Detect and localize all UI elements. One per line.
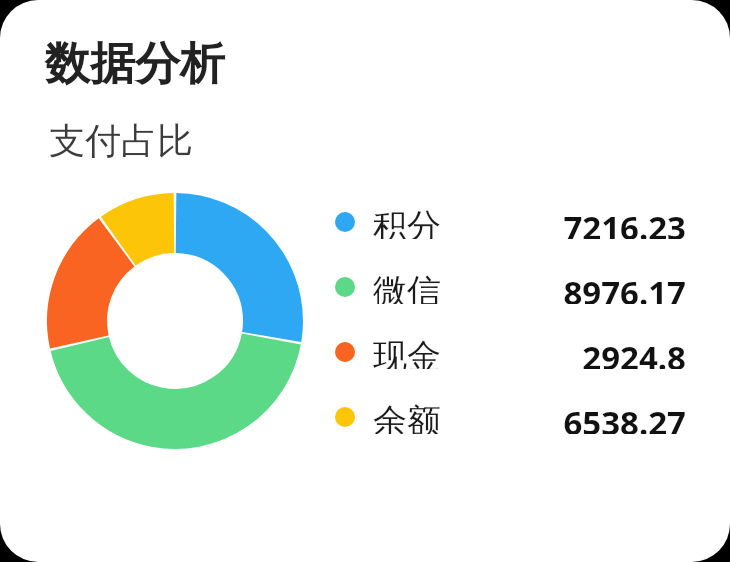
staticText: 8976.17 bbox=[563, 270, 686, 304]
staticText: 积分 bbox=[373, 205, 441, 239]
staticText: 6538.27 bbox=[563, 400, 686, 434]
staticText: 现金 bbox=[373, 335, 441, 369]
button[interactable]: 余额 bbox=[335, 400, 686, 434]
staticText: 数据分析 bbox=[45, 36, 225, 93]
staticText: 微信 bbox=[373, 270, 441, 304]
button[interactable]: 支付占比环形图 bbox=[47, 193, 303, 449]
staticText: 余额 bbox=[373, 400, 441, 434]
button[interactable]: 现金 bbox=[335, 335, 686, 369]
button[interactable]: 积分 bbox=[335, 205, 686, 239]
staticText: 2924.8 bbox=[582, 335, 686, 369]
staticText: 支付占比 bbox=[49, 118, 193, 163]
button[interactable]: 微信 bbox=[335, 270, 686, 304]
staticText: 7216.23 bbox=[563, 205, 686, 239]
